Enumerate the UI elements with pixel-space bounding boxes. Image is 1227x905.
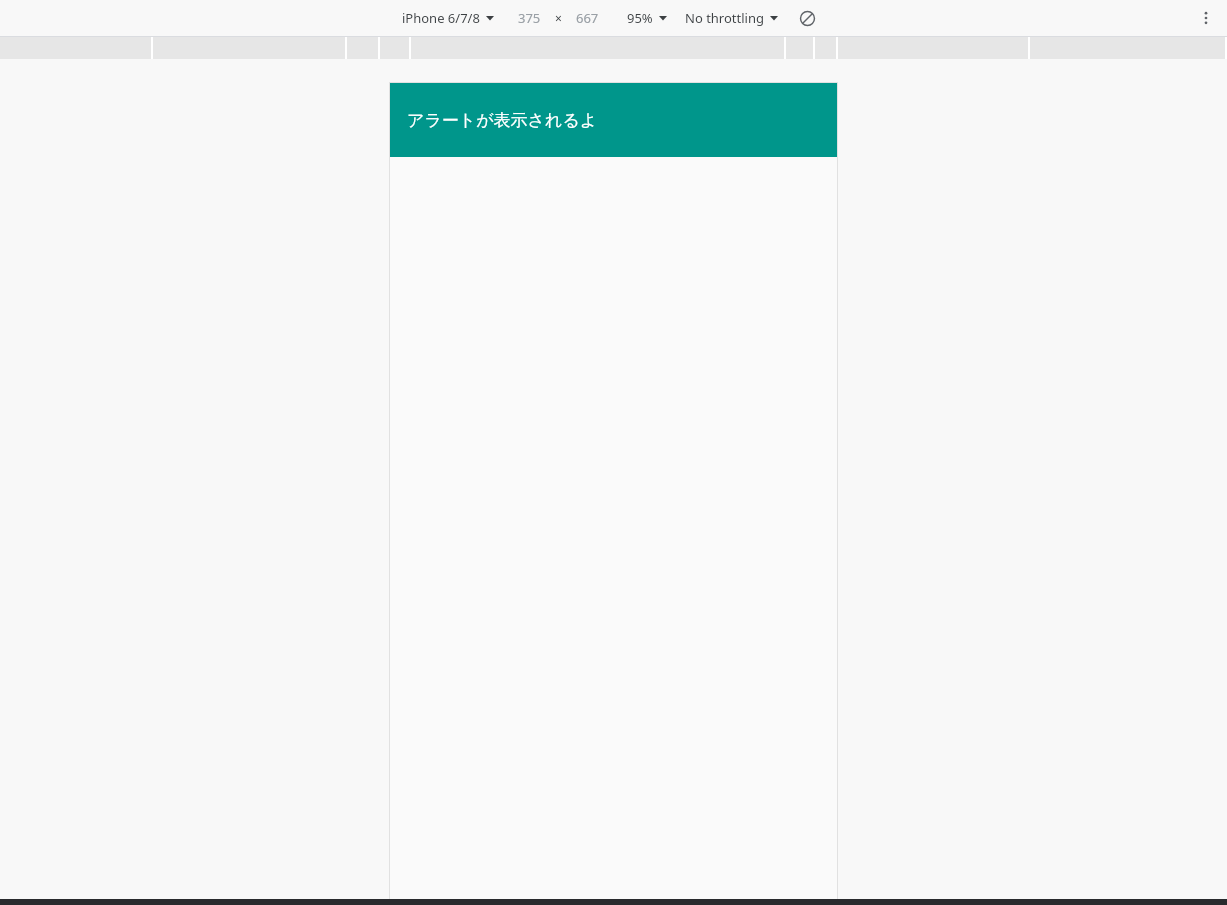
- staticText: アラートが表示されるよ: [407, 110, 598, 131]
- staticText: 667: [576, 9, 599, 27]
- button[interactable]: Rotate device orientation: [794, 5, 820, 31]
- button[interactable]: アラートが表示されるよ: [390, 83, 837, 157]
- staticText: 95%: [627, 9, 653, 27]
- button[interactable]: 95%: [623, 6, 671, 30]
- staticText: No throttling: [685, 9, 764, 27]
- button[interactable]: More options: [1193, 5, 1219, 31]
- button[interactable]: No throttling: [681, 6, 782, 30]
- staticText: ×: [555, 10, 562, 26]
- staticText: 375: [518, 9, 541, 27]
- staticText: iPhone 6/7/8: [402, 9, 480, 27]
- button[interactable]: iPhone 6/7/8: [398, 6, 498, 30]
